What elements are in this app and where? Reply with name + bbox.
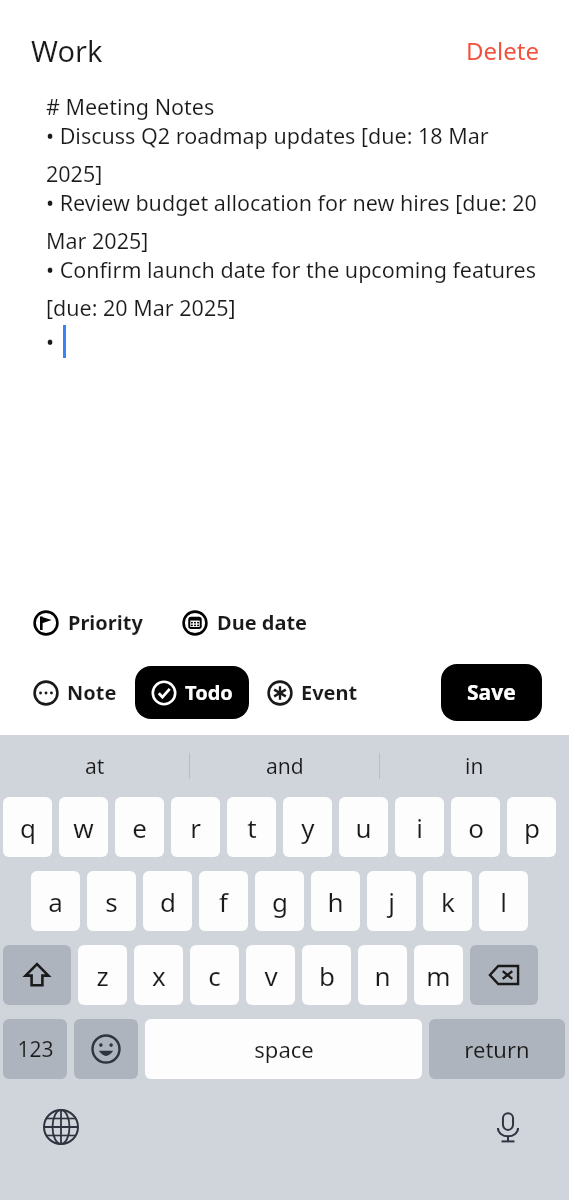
staticText: b [319, 958, 335, 993]
staticText: in [465, 752, 484, 781]
button[interactable]: q [3, 797, 52, 857]
staticText: at [85, 752, 105, 781]
staticText: n [374, 958, 391, 993]
button[interactable]: o [451, 797, 500, 857]
staticText: a [48, 884, 63, 919]
staticText: q [20, 810, 36, 845]
button[interactable]: Due date [180, 603, 310, 642]
staticText: z [96, 958, 109, 993]
button[interactable]: Shift [3, 945, 71, 1005]
button[interactable]: c [190, 945, 239, 1005]
staticText: o [468, 810, 484, 845]
button[interactable]: Backspace [470, 945, 538, 1005]
staticText: i [416, 810, 423, 845]
button[interactable]: t [227, 797, 276, 857]
button[interactable]: Emoji [74, 1019, 138, 1079]
staticText: p [524, 810, 540, 845]
staticText: s [105, 884, 118, 919]
staticText: x [152, 958, 166, 993]
button[interactable]: f [199, 871, 248, 931]
button[interactable]: j [367, 871, 416, 931]
button[interactable]: w [59, 797, 108, 857]
button[interactable]: return [429, 1019, 565, 1079]
button[interactable]: v [246, 945, 295, 1005]
button[interactable]: 123 [3, 1019, 67, 1079]
staticText: r [190, 810, 201, 845]
staticText: Event [301, 679, 358, 706]
staticText: Note [67, 679, 117, 706]
staticText: Todo [185, 679, 233, 706]
staticText: y [301, 810, 315, 845]
button[interactable]: k [423, 871, 472, 931]
staticText: l [500, 884, 507, 919]
button[interactable]: n [358, 945, 407, 1005]
staticText: g [272, 884, 288, 919]
staticText: k [441, 884, 455, 919]
staticText: Save [467, 678, 516, 707]
button[interactable]: s [87, 871, 136, 931]
staticText: d [160, 884, 176, 919]
staticText: 123 [17, 1035, 54, 1064]
button[interactable]: Change keyboard [40, 1106, 82, 1148]
button[interactable]: x [134, 945, 183, 1005]
button[interactable]: y [283, 797, 332, 857]
button[interactable]: g [255, 871, 304, 931]
button[interactable]: l [479, 871, 528, 931]
staticText: m [426, 958, 451, 993]
button[interactable]: space [145, 1019, 422, 1079]
staticText: • Discuss Q2 roadmap updates [due: 18 Ma… [46, 121, 539, 188]
button[interactable]: Priority [31, 603, 145, 642]
staticText: Due date [217, 609, 308, 636]
button[interactable]: i [395, 797, 444, 857]
staticText: u [355, 810, 372, 845]
button[interactable]: Work [31, 31, 103, 70]
button[interactable]: Todo [135, 666, 249, 719]
staticText: t [247, 810, 257, 845]
staticText: • Review budget allocation for new hires… [46, 188, 539, 255]
staticText: # Meeting Notes [46, 92, 215, 121]
staticText: Priority [68, 609, 143, 636]
staticText: w [73, 810, 94, 845]
button[interactable]: b [302, 945, 351, 1005]
staticText: c [208, 958, 221, 993]
staticText: space [254, 1034, 314, 1064]
button[interactable]: and [190, 752, 379, 781]
button[interactable]: in [380, 752, 569, 781]
button[interactable]: h [311, 871, 360, 931]
button[interactable]: Dictate [487, 1106, 529, 1148]
button[interactable]: Delete [466, 34, 539, 67]
staticText: • Confirm launch date for the upcoming f… [46, 255, 539, 322]
staticText: e [132, 810, 147, 845]
staticText: v [264, 958, 278, 993]
staticText: j [388, 884, 395, 919]
button[interactable]: z [78, 945, 127, 1005]
button[interactable]: r [171, 797, 220, 857]
button[interactable]: p [507, 797, 556, 857]
button[interactable]: Save [441, 664, 542, 721]
button[interactable]: u [339, 797, 388, 857]
staticText: return [464, 1034, 530, 1064]
button[interactable]: at [0, 752, 189, 781]
button[interactable]: m [414, 945, 463, 1005]
staticText: h [327, 884, 344, 919]
button[interactable]: d [143, 871, 192, 931]
button[interactable]: e [115, 797, 164, 857]
staticText: and [266, 752, 304, 781]
staticText: • [46, 327, 55, 356]
button[interactable]: a [31, 871, 80, 931]
button[interactable]: Event [263, 669, 362, 716]
button[interactable]: Note [29, 669, 121, 716]
staticText: f [219, 884, 228, 919]
